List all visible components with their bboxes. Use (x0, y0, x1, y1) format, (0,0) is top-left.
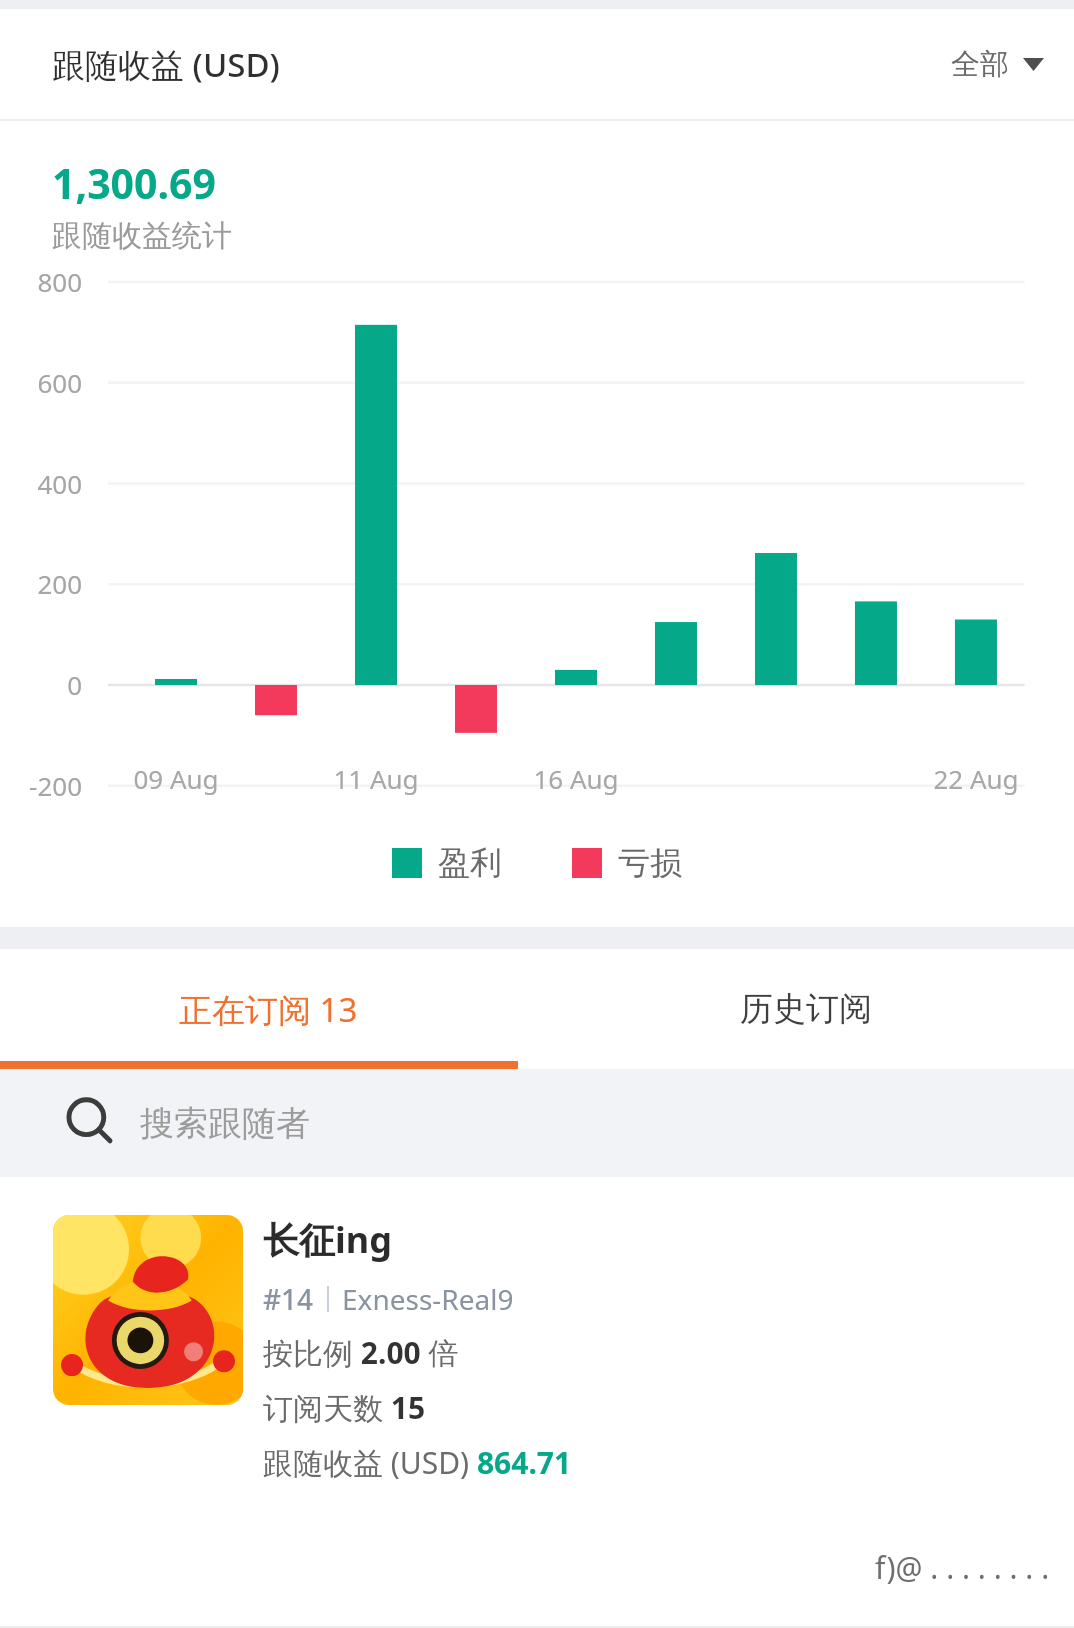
staticText: 历史订阅 (740, 988, 872, 1030)
staticText: 订阅天数 15 (263, 1387, 426, 1428)
staticText: 正在订阅 13 (179, 987, 358, 1032)
button[interactable]: 正在订阅 13 (0, 949, 537, 1069)
staticText: 亏损 (618, 843, 682, 883)
button[interactable]: Search (0, 1069, 1074, 1177)
button[interactable]: 全部 (921, 28, 1074, 101)
staticText: 1,300.69 (52, 155, 216, 211)
staticText: 600 (0, 365, 82, 400)
staticText: 全部 (951, 46, 1009, 83)
other: Search (62, 1094, 120, 1152)
staticText: #14 (263, 1280, 314, 1318)
staticText: 09 Aug (114, 761, 238, 796)
staticText: 400 (0, 466, 82, 501)
button[interactable]: 长征ing (0, 1177, 1074, 1483)
staticText: 按比例 2.00 倍 (263, 1332, 459, 1373)
staticText: 盈利 (438, 843, 502, 883)
staticText: 0 (0, 667, 82, 702)
staticText: 长征ing (263, 1215, 392, 1264)
staticText: f)@ . . . . . . . . (875, 1547, 1050, 1588)
staticText: 搜索跟随者 (140, 1102, 310, 1145)
staticText: 跟随收益 (USD) (52, 42, 280, 87)
staticText: 跟随收益 (USD) 864.71 (263, 1442, 572, 1483)
staticText: 200 (0, 566, 82, 601)
staticText: 跟随收益统计 (52, 217, 232, 255)
staticText: 22 Aug (914, 761, 1038, 796)
staticText: 800 (0, 264, 82, 299)
staticText: Exness-Real9 (342, 1280, 514, 1318)
staticText: 16 Aug (514, 761, 638, 796)
staticText: -200 (0, 768, 82, 803)
button[interactable]: 历史订阅 (537, 949, 1074, 1069)
staticText: 11 Aug (314, 761, 438, 796)
